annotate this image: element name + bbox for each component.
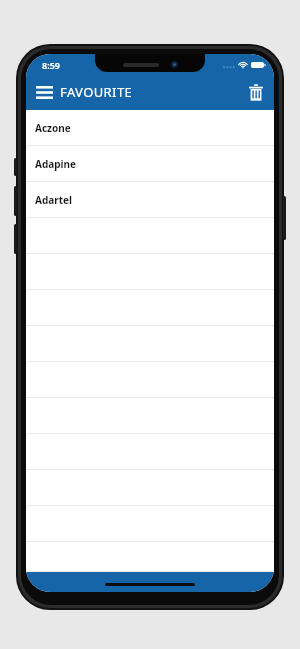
button[interactable] xyxy=(26,506,274,542)
button[interactable] xyxy=(26,398,274,434)
staticText: Adartel xyxy=(35,193,72,207)
staticText: Adapine xyxy=(35,157,77,171)
button[interactable] xyxy=(26,290,274,326)
button[interactable] xyxy=(26,218,274,254)
staticText: 8:59 xyxy=(42,59,60,71)
button[interactable]: Adapine xyxy=(26,146,274,182)
button[interactable]: Adartel xyxy=(26,182,274,218)
button[interactable] xyxy=(26,470,274,506)
button[interactable] xyxy=(26,362,274,398)
staticText: Aczone xyxy=(35,121,71,135)
button[interactable] xyxy=(26,254,274,290)
button[interactable]: Open navigation menu xyxy=(32,79,137,105)
button[interactable] xyxy=(26,542,274,572)
staticText: FAVOURITE xyxy=(60,83,133,101)
button[interactable]: Delete all favourites xyxy=(245,80,267,105)
button[interactable]: Aczone xyxy=(26,110,274,146)
button[interactable] xyxy=(26,326,274,362)
button[interactable] xyxy=(26,434,274,470)
other: Open navigation menu xyxy=(36,86,53,99)
